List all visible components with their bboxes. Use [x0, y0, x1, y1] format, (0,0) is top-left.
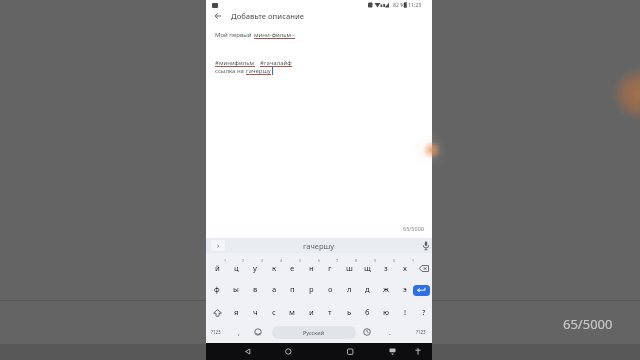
staticText: 4 — [280, 258, 283, 263]
staticText: › — [217, 241, 220, 251]
staticText: ц — [234, 263, 239, 273]
staticText: и — [309, 307, 314, 317]
staticText: х — [403, 263, 407, 273]
staticText: ? — [422, 307, 426, 317]
staticText: в — [253, 284, 258, 294]
staticText: ю — [383, 307, 390, 317]
staticText: о — [328, 284, 333, 294]
staticText: э — [403, 284, 407, 294]
staticText: 6 — [318, 258, 321, 263]
staticText: ч — [253, 307, 258, 317]
staticText: а — [272, 284, 277, 294]
staticText: Добавьте описание — [231, 11, 305, 21]
button[interactable] — [210, 10, 228, 24]
staticText: 11:23 — [408, 1, 422, 8]
staticText: , — [238, 328, 240, 337]
staticText: м — [289, 307, 295, 317]
staticText: ?123 — [211, 329, 221, 335]
staticText: 65/5000 — [403, 225, 424, 232]
staticText: гачершу — [303, 241, 335, 251]
staticText: с — [272, 307, 276, 317]
staticText: у — [253, 263, 257, 273]
staticText: 82 % — [393, 1, 405, 8]
staticText: е — [290, 263, 295, 273]
staticText: я — [234, 307, 239, 317]
staticText: Русский — [303, 329, 325, 336]
staticText: щ — [364, 263, 371, 273]
staticText: 5 — [299, 258, 302, 263]
staticText: ы — [233, 284, 239, 294]
staticText: н — [309, 263, 314, 273]
staticText: ?123 — [416, 329, 426, 335]
button[interactable]: Русский — [272, 326, 356, 339]
staticText: . — [389, 328, 391, 337]
staticText: п — [290, 284, 295, 294]
staticText: г — [328, 263, 332, 273]
staticText: к — [272, 263, 277, 273]
staticText: р — [309, 284, 314, 294]
button[interactable]: гачершу — [206, 238, 432, 253]
staticText: 2 — [242, 258, 245, 263]
staticText: з — [384, 263, 388, 273]
staticText: #гачалайф — [260, 59, 292, 67]
button[interactable] — [413, 285, 430, 296]
staticText: б — [365, 307, 370, 317]
staticText: ь — [347, 307, 352, 317]
staticText: 0 — [393, 258, 396, 263]
staticText: ж — [383, 284, 389, 294]
staticText: ! — [404, 307, 407, 317]
staticText: 1 — [224, 258, 227, 263]
staticText: #минифильм — [215, 59, 255, 67]
staticText: й — [215, 263, 220, 273]
staticText: Мой первый — [215, 31, 254, 39]
staticText: 1 — [412, 258, 415, 263]
button[interactable]: › — [211, 240, 225, 251]
staticText: д — [365, 284, 370, 294]
staticText: ф — [214, 284, 220, 294]
staticText: мини-фильм~ — [254, 31, 295, 39]
staticText: 65/5000 — [563, 315, 613, 333]
staticText: гачершу — [246, 67, 271, 75]
staticText: л — [347, 284, 352, 294]
staticText: 7 — [336, 258, 339, 263]
staticText: 8 — [355, 258, 358, 263]
staticText: 3 — [261, 258, 264, 263]
staticText: 9 — [374, 258, 377, 263]
staticText: ш — [346, 263, 353, 273]
staticText: т — [328, 307, 332, 317]
staticText: ссылка на — [215, 67, 246, 75]
